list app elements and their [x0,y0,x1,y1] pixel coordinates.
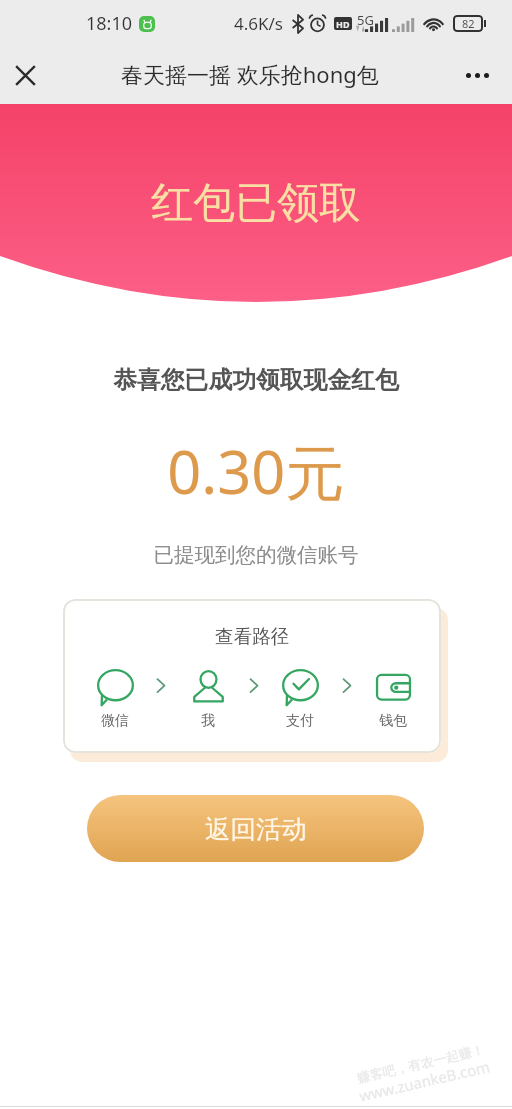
staticText: 钱包 [379,712,407,730]
staticText: 支付 [286,712,314,730]
staticText: 5G [357,11,374,29]
staticText: HD [336,18,350,30]
staticText: 红包已领取 [151,177,361,230]
staticText: 0.30元 [0,430,512,511]
staticText: 4.6K/s [234,12,283,35]
staticText: 返回活动 [205,813,307,845]
staticText: 82 [462,16,475,31]
staticText: www.zuankeB.com [357,1056,492,1106]
staticText: 赚客吧，有农一起赚！ [356,1041,486,1086]
button[interactable]: More options [455,53,500,98]
staticText: 已提现到您的微信账号 [0,542,512,568]
staticText: 我 [201,712,215,730]
staticText: 微信 [101,712,129,730]
staticText: 春天摇一摇 欢乐抢hong包 [121,59,379,89]
staticText: 18:10 [86,11,133,36]
button[interactable]: 返回活动 [87,795,424,862]
staticText: 恭喜您已成功领取现金红包 [0,365,512,395]
staticText: 查看路径 [215,625,289,648]
button[interactable]: Close [3,53,48,98]
